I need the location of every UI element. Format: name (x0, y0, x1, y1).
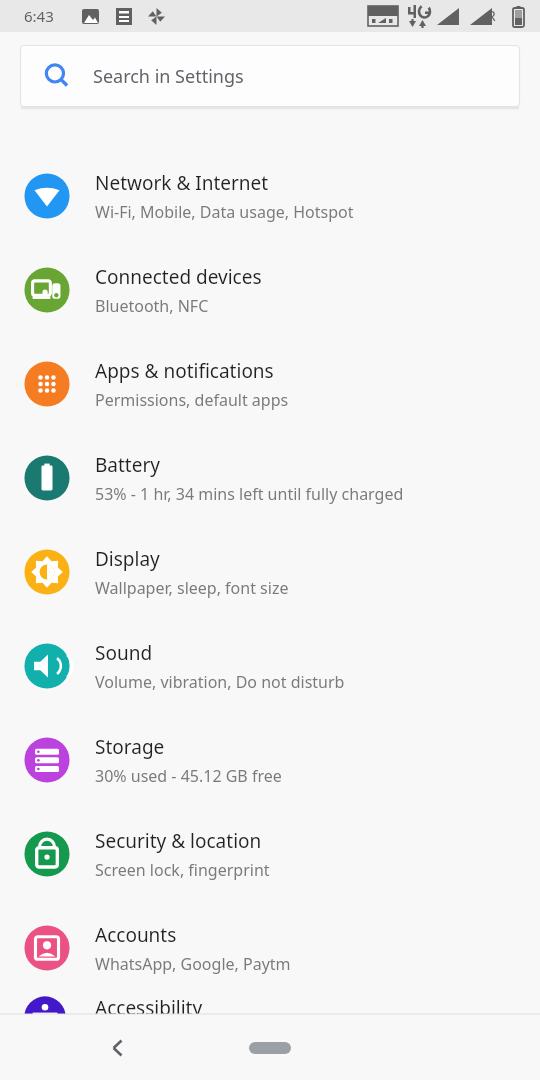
button[interactable]: Accessibility (0, 995, 540, 1039)
staticText: Apps & notifications (95, 358, 274, 384)
staticText: Network & Internet (95, 170, 269, 196)
button[interactable]: Security & location (0, 807, 540, 901)
staticText: Search in Settings (93, 64, 244, 89)
staticText: R (487, 6, 496, 25)
button[interactable]: Network & Internet (0, 149, 540, 243)
staticText: Security & location (95, 828, 262, 854)
staticText: Display (95, 546, 160, 572)
button[interactable]: Back (96, 1026, 140, 1070)
staticText: Volume, vibration, Do not disturb (95, 671, 345, 693)
button[interactable]: Search in Settings (20, 45, 520, 107)
staticText: WhatsApp, Google, Paytm (95, 953, 291, 975)
staticText: Screen lock, fingerprint (95, 859, 270, 881)
staticText: Accounts (95, 922, 177, 948)
staticText: Connected devices (95, 264, 262, 290)
staticText: Sound (95, 640, 153, 666)
staticText: Storage (95, 734, 165, 760)
staticText: Battery (95, 452, 160, 478)
staticText: 30% used - 45.12 GB free (95, 765, 282, 787)
button[interactable]: Storage (0, 713, 540, 807)
button[interactable]: Apps & notifications (0, 337, 540, 431)
button[interactable]: Connected devices (0, 243, 540, 337)
button[interactable]: Home (249, 1042, 291, 1054)
button[interactable]: Battery (0, 431, 540, 525)
staticText: 6:43 (24, 6, 54, 26)
staticText: Accessibility (95, 995, 203, 1021)
button[interactable]: Display (0, 525, 540, 619)
staticText: Wallpaper, sleep, font size (95, 577, 289, 599)
button[interactable]: Accounts (0, 901, 540, 995)
staticText: Wi-Fi, Mobile, Data usage, Hotspot (95, 201, 354, 223)
staticText: 53% - 1 hr, 34 mins left until fully cha… (95, 483, 404, 505)
button[interactable]: Sound (0, 619, 540, 713)
staticText: Permissions, default apps (95, 389, 289, 411)
staticText: Bluetooth, NFC (95, 295, 209, 317)
